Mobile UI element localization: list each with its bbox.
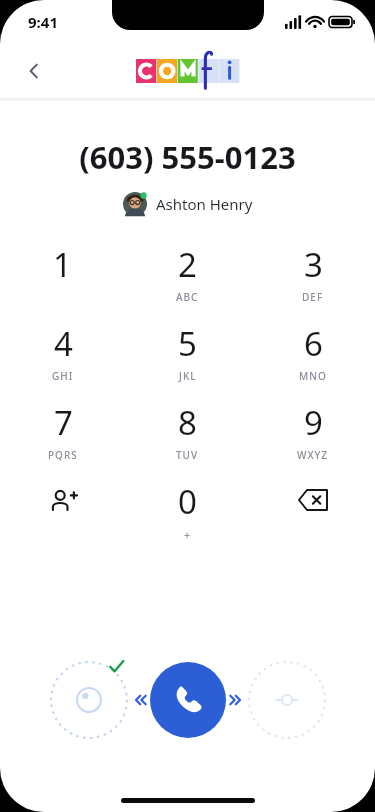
button[interactable]: Back [12,49,56,93]
staticText: 8 [178,400,197,445]
button[interactable]: Call [150,662,226,738]
staticText: 7 [54,400,73,445]
button[interactable]: 3 [250,242,375,321]
staticText: PQRS [48,448,78,462]
staticText: + [184,527,191,542]
staticText: (603) 555-0123 [79,136,296,178]
staticText: WXYZ [297,448,329,462]
staticText: 5 [178,321,197,366]
button[interactable]: 1 [0,242,125,321]
staticText: GHI [52,369,74,383]
button[interactable]: 6 [250,321,375,400]
staticText: 2 [178,242,197,287]
button[interactable]: Delete [250,479,375,558]
staticText: 9 [304,400,323,445]
button[interactable]: 5 [125,321,250,400]
button[interactable]: 2 [125,242,250,321]
staticText: 6 [304,321,323,366]
staticText: TUV [176,448,199,462]
button[interactable]: 4 [0,321,125,400]
staticText: MNO [299,369,327,383]
button[interactable]: 9 [250,400,375,479]
button[interactable]: 7 [0,400,125,479]
button[interactable]: Add contact [0,479,125,558]
staticText: 1 [53,242,72,287]
staticText: ABC [176,290,199,304]
staticText: DEF [302,290,324,304]
staticText: 0 [178,479,197,524]
button[interactable]: Carrier call [244,657,330,743]
staticText: Ashton Henry [156,194,253,214]
button[interactable]: 0 [125,479,250,558]
staticText: 3 [304,242,323,287]
button[interactable]: Internet call selected [46,657,132,743]
staticText: 4 [54,321,73,366]
button[interactable]: 8 [125,400,250,479]
staticText: JKL [179,369,197,383]
staticText: 9:41 [28,12,58,32]
